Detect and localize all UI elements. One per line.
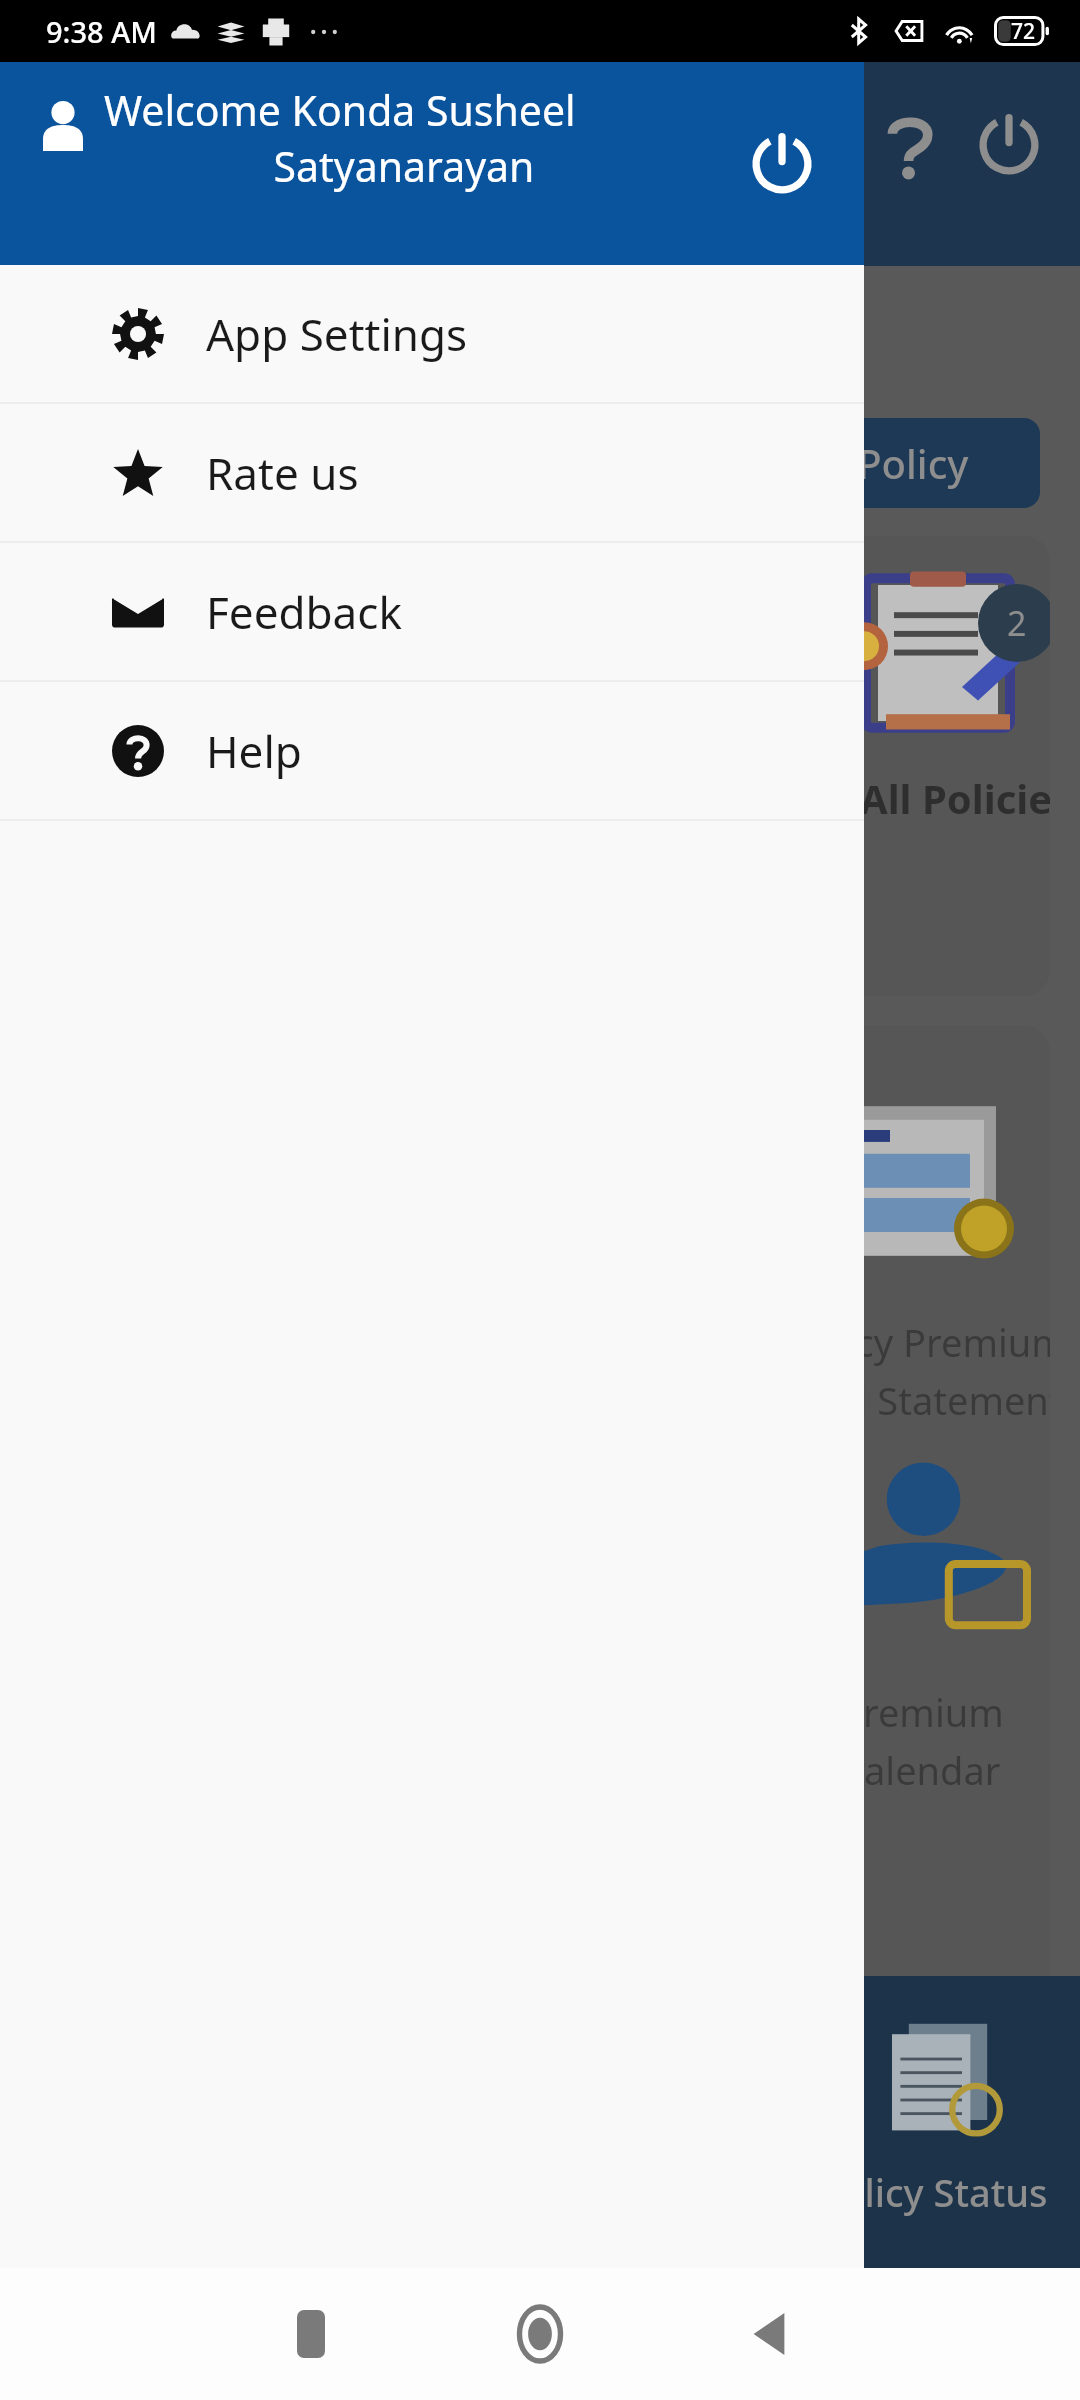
staticText: Add Policy	[771, 436, 969, 490]
staticText: Calendar	[840, 1744, 1001, 1796]
button[interactable]: Back	[726, 2291, 812, 2377]
staticText: 72	[1011, 17, 1036, 46]
staticText: Rate us	[206, 443, 359, 503]
button[interactable]: Welcome Konda Susheel	[0, 62, 864, 265]
staticText: Satyanarayan	[104, 138, 704, 194]
button[interactable]: Home	[497, 2291, 583, 2377]
button[interactable]: App Settings	[0, 265, 864, 402]
staticText: 2	[1007, 600, 1027, 646]
button[interactable]: Logout	[736, 118, 828, 210]
staticText: Paid Statement	[790, 1374, 1050, 1426]
button[interactable]: Rate us	[0, 404, 864, 541]
button[interactable]: Help	[0, 682, 864, 819]
staticText: Policy Status	[818, 2166, 1048, 2218]
staticText: Help	[206, 721, 302, 781]
staticText: Welcome Konda Susheel	[104, 82, 576, 138]
staticText: Feedback	[206, 582, 402, 642]
staticText: App Settings	[206, 304, 468, 364]
staticText: Premium	[840, 1686, 1004, 1738]
staticText: Policy Premium	[790, 1316, 1050, 1368]
staticText: All Policies	[860, 771, 1050, 825]
button[interactable]: Feedback	[0, 543, 864, 680]
button[interactable]: Recent apps	[268, 2291, 354, 2377]
staticText: 9:38 AM	[46, 12, 157, 51]
